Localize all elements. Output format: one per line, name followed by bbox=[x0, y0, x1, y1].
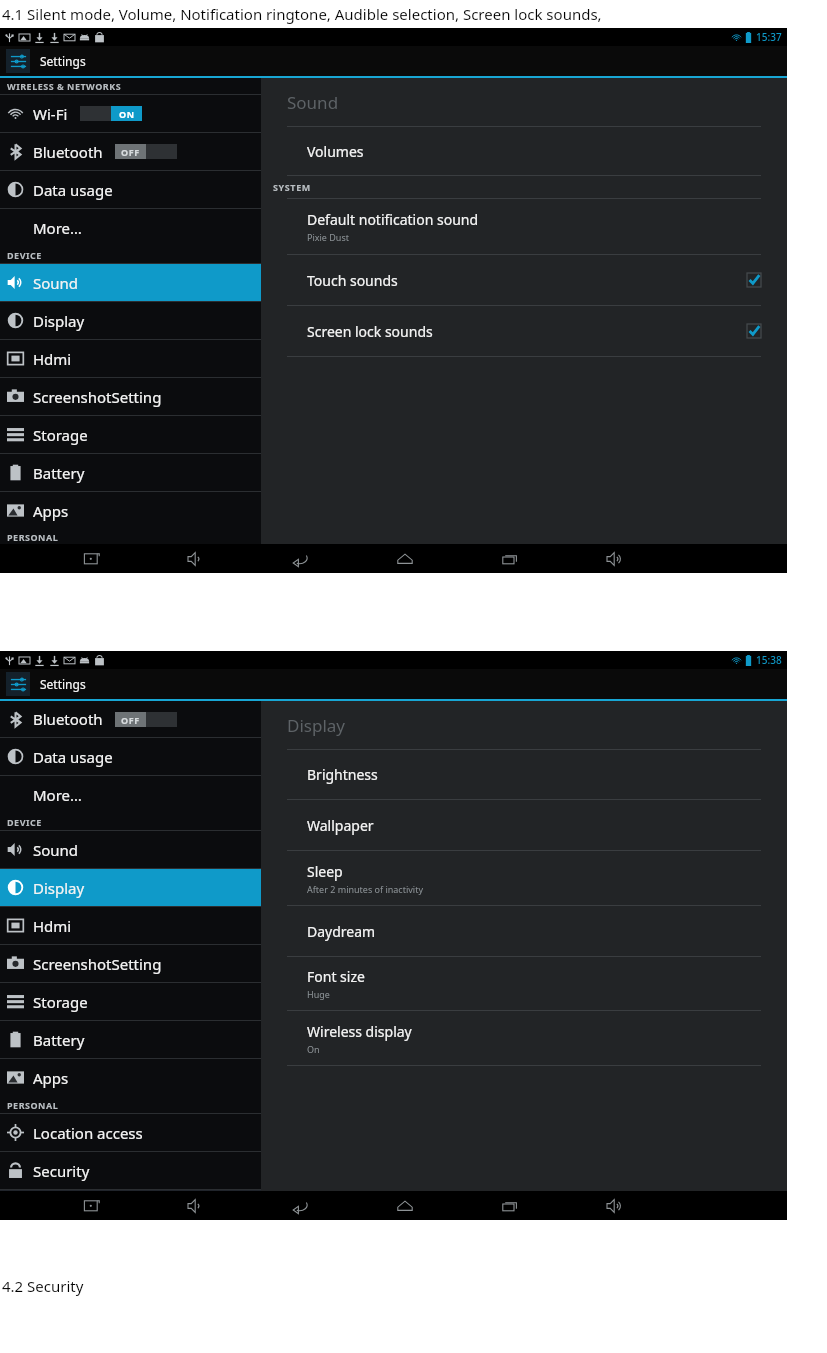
button[interactable]: Touch sounds bbox=[261, 255, 787, 305]
button[interactable]: Hdmi bbox=[0, 907, 261, 944]
staticText: OFF bbox=[121, 714, 140, 726]
staticText: Battery bbox=[33, 463, 85, 483]
button[interactable]: Sound bbox=[0, 831, 261, 868]
button[interactable]: Recents bbox=[457, 1191, 562, 1220]
button[interactable]: Security bbox=[0, 1152, 261, 1189]
button[interactable]: Settings bbox=[6, 672, 30, 696]
staticText: More… bbox=[33, 218, 82, 238]
staticText: 4.1 Silent mode, Volume, Notification ri… bbox=[2, 4, 602, 24]
button[interactable]: Screenshot bbox=[40, 544, 144, 573]
staticText: OFF bbox=[121, 146, 140, 158]
staticText: Battery bbox=[33, 1030, 85, 1050]
button[interactable]: Apps bbox=[0, 492, 261, 529]
button[interactable]: ScreenshotSetting bbox=[0, 945, 261, 982]
staticText: Font size bbox=[307, 967, 365, 986]
button[interactable]: Sleep bbox=[261, 851, 787, 905]
staticText: Apps bbox=[33, 501, 69, 521]
button[interactable]: Apps bbox=[0, 1059, 261, 1096]
button[interactable]: ON bbox=[80, 106, 142, 121]
staticText: Data usage bbox=[33, 180, 113, 200]
staticText: Screen lock sounds bbox=[307, 322, 433, 341]
staticText: Default notification sound bbox=[307, 210, 479, 229]
staticText: SYSTEM bbox=[273, 181, 311, 193]
staticText: After 2 minutes of inactivity bbox=[307, 883, 423, 895]
staticText: 4.2 Security bbox=[2, 1276, 84, 1296]
staticText: PERSONAL bbox=[7, 531, 59, 543]
button[interactable]: Recents bbox=[457, 544, 562, 573]
button[interactable]: Back bbox=[248, 544, 352, 573]
button[interactable]: ScreenshotSetting bbox=[0, 378, 261, 415]
staticText: Wallpaper bbox=[307, 816, 374, 835]
button[interactable]: Storage bbox=[0, 416, 261, 453]
staticText: DEVICE bbox=[7, 249, 42, 261]
button[interactable]: Data usage bbox=[0, 171, 261, 208]
button[interactable]: Volume up bbox=[562, 544, 667, 573]
staticText: Volumes bbox=[307, 142, 364, 161]
staticText: Display bbox=[33, 311, 85, 331]
staticText: 15:37 bbox=[756, 30, 782, 44]
staticText: Brightness bbox=[307, 765, 378, 784]
button[interactable]: More… bbox=[0, 209, 261, 246]
staticText: ScreenshotSetting bbox=[33, 954, 162, 974]
staticText: Location access bbox=[33, 1123, 143, 1143]
staticText: ON bbox=[119, 108, 135, 120]
button[interactable]: Default notification sound bbox=[261, 199, 787, 254]
button[interactable]: Bluetooth bbox=[0, 133, 261, 170]
button[interactable]: Display bbox=[0, 302, 261, 339]
staticText: Pixie Dust bbox=[307, 231, 349, 243]
staticText: Security bbox=[33, 1161, 90, 1181]
button[interactable]: Screen lock sounds bbox=[261, 306, 787, 356]
button[interactable]: Volume down bbox=[144, 1191, 248, 1220]
button[interactable]: Home bbox=[352, 1191, 457, 1220]
staticText: Daydream bbox=[307, 922, 376, 941]
button[interactable]: Location access bbox=[0, 1114, 261, 1151]
staticText: Hdmi bbox=[33, 916, 72, 936]
button[interactable]: Bluetooth bbox=[0, 701, 261, 737]
staticText: Display bbox=[287, 714, 345, 737]
staticText: Sound bbox=[33, 273, 79, 293]
button[interactable]: Display bbox=[0, 869, 261, 906]
staticText: Data usage bbox=[33, 747, 113, 767]
staticText: Hdmi bbox=[33, 349, 72, 369]
staticText: Wi-Fi bbox=[33, 104, 68, 124]
staticText: 15:38 bbox=[756, 653, 782, 667]
staticText: Bluetooth bbox=[33, 709, 103, 729]
button[interactable]: Storage bbox=[0, 983, 261, 1020]
button[interactable]: Font size bbox=[261, 957, 787, 1010]
button[interactable]: Wallpaper bbox=[261, 800, 787, 850]
button[interactable]: Settings bbox=[6, 49, 30, 73]
button[interactable]: Hdmi bbox=[0, 340, 261, 377]
button[interactable]: Brightness bbox=[261, 750, 787, 799]
button[interactable]: OFF bbox=[115, 712, 177, 727]
staticText: Display bbox=[33, 878, 85, 898]
staticText: More… bbox=[33, 785, 82, 805]
button[interactable]: Volume down bbox=[144, 544, 248, 573]
button[interactable]: Battery bbox=[0, 1021, 261, 1058]
button[interactable]: Home bbox=[352, 544, 457, 573]
staticText: WIRELESS & NETWORKS bbox=[7, 80, 122, 92]
button[interactable]: OFF bbox=[115, 144, 177, 159]
staticText: PERSONAL bbox=[7, 1099, 59, 1111]
staticText: Settings bbox=[40, 676, 86, 692]
staticText: Sleep bbox=[307, 862, 343, 881]
staticText: Bluetooth bbox=[33, 142, 103, 162]
button[interactable]: Volume up bbox=[562, 1191, 667, 1220]
staticText: Sound bbox=[33, 840, 79, 860]
staticText: ScreenshotSetting bbox=[33, 387, 162, 407]
button[interactable]: Daydream bbox=[261, 906, 787, 956]
button[interactable]: Volumes bbox=[261, 127, 787, 175]
button[interactable]: Battery bbox=[0, 454, 261, 491]
staticText: Sound bbox=[287, 91, 339, 114]
staticText: DEVICE bbox=[7, 816, 42, 828]
button[interactable]: Wireless display bbox=[261, 1011, 787, 1065]
button[interactable]: Screenshot bbox=[40, 1191, 144, 1220]
button[interactable]: Wi-Fi bbox=[0, 95, 261, 132]
button[interactable]: More… bbox=[0, 776, 261, 813]
staticText: Apps bbox=[33, 1068, 69, 1088]
staticText: On bbox=[307, 1043, 320, 1055]
staticText: Settings bbox=[40, 53, 86, 69]
button[interactable]: Back bbox=[248, 1191, 352, 1220]
button[interactable]: Data usage bbox=[0, 738, 261, 775]
staticText: Wireless display bbox=[307, 1022, 412, 1041]
button[interactable]: Sound bbox=[0, 264, 261, 301]
